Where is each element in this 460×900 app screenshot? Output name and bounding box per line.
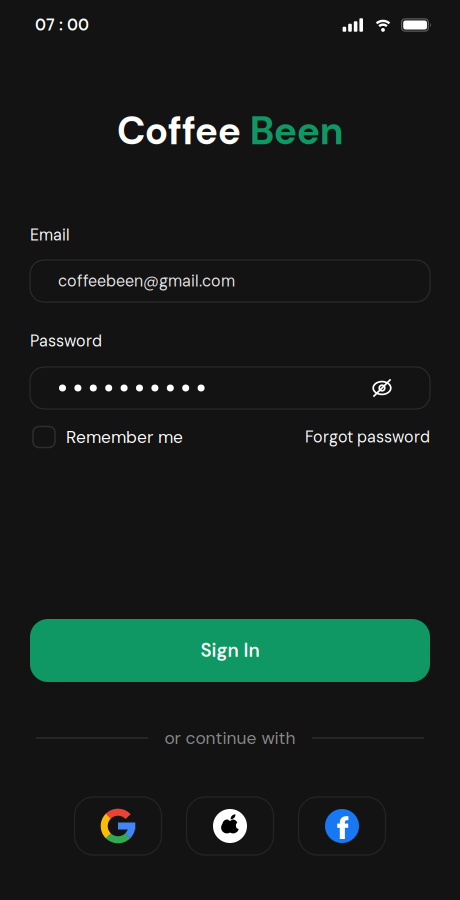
button[interactable]: Password	[0, 367, 460, 409]
staticText: Forgot password	[305, 427, 430, 447]
button[interactable]: Sign in with Google	[74, 797, 161, 855]
button[interactable]: Forgot password	[305, 427, 430, 447]
button[interactable]: Email, coffeebeen@gmail.com	[0, 260, 460, 302]
staticText: 07 : 00	[35, 15, 89, 35]
button[interactable]: Sign In	[0, 619, 460, 682]
button[interactable]: Sign in with Apple	[186, 797, 273, 855]
button[interactable]: Remember me	[33, 426, 183, 448]
button[interactable]: Sign in with Facebook	[298, 797, 385, 855]
button[interactable]: Show password	[371, 377, 393, 399]
staticText: Email	[30, 225, 70, 245]
staticText: or continue with	[164, 727, 295, 749]
staticText: Remember me	[66, 426, 183, 448]
staticText: Sign In	[200, 639, 259, 662]
staticText: Password	[30, 331, 102, 351]
staticText: Coffee	[117, 106, 250, 156]
staticText: coffeebeen@gmail.com	[58, 271, 235, 291]
staticText: Been	[250, 106, 343, 156]
